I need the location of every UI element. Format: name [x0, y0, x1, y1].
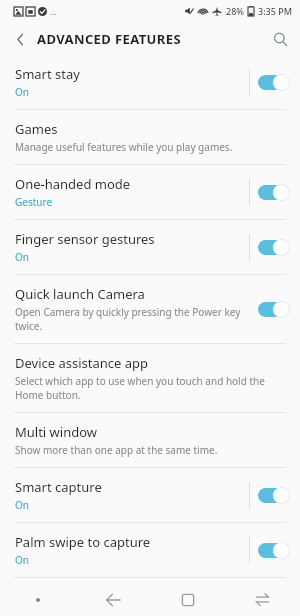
staticText: Gesture	[15, 195, 53, 209]
staticText: On	[15, 250, 29, 264]
staticText: Select which app to use when you touch a…	[15, 374, 292, 402]
staticText: On	[15, 498, 29, 512]
button[interactable]: Back	[7, 26, 33, 52]
staticText: Finger sensor gestures	[15, 230, 155, 248]
staticText: Device assistance app	[15, 354, 149, 372]
button[interactable]: Smart stay	[0, 55, 300, 110]
button[interactable]: Recent apps	[225, 583, 300, 616]
staticText: On	[15, 85, 29, 99]
button[interactable]: Toggle	[258, 301, 290, 318]
button[interactable]: Toggle	[258, 74, 290, 91]
staticText: 28%	[226, 5, 244, 17]
button[interactable]: Quick launch Camera	[0, 275, 300, 344]
staticText: 3:35 PM	[258, 5, 292, 17]
button[interactable]: Device assistance app	[0, 344, 300, 413]
button[interactable]: Home	[150, 583, 225, 616]
button[interactable]: Multi window	[0, 413, 300, 468]
button[interactable]: Menu indicator	[0, 583, 75, 616]
button[interactable]: Palm swipe to capture	[0, 523, 300, 578]
button[interactable]: Search	[267, 26, 293, 52]
staticText: Quick launch Camera	[15, 285, 145, 303]
staticText: On	[15, 553, 29, 567]
staticText: Open Camera by quickly pressing the Powe…	[15, 305, 241, 333]
staticText: Multi window	[15, 423, 98, 441]
button[interactable]: Games	[0, 110, 300, 165]
button[interactable]: Toggle	[258, 542, 290, 559]
staticText: Smart capture	[15, 478, 102, 496]
button[interactable]: Toggle	[258, 487, 290, 504]
staticText: Palm swipe to capture	[15, 533, 151, 551]
button[interactable]: Toggle	[258, 239, 290, 256]
button[interactable]: Finger sensor gestures	[0, 220, 300, 275]
button[interactable]: Smart capture	[0, 468, 300, 523]
staticText: Games	[15, 120, 58, 138]
button[interactable]: Toggle	[258, 184, 290, 201]
button[interactable]: One-handed mode	[0, 165, 300, 220]
staticText: Smart stay	[15, 65, 80, 83]
staticText: ...	[50, 6, 57, 17]
staticText: ADVANCED FEATURES	[37, 30, 182, 48]
staticText: Show more than one app at the same time.	[15, 443, 218, 457]
staticText: Manage useful features while you play ga…	[15, 140, 233, 154]
button[interactable]: Back	[75, 583, 150, 616]
staticText: One-handed mode	[15, 175, 131, 193]
